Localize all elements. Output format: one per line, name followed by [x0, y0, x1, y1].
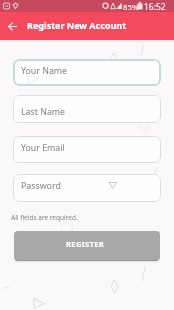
staticText: 85%: [123, 2, 139, 13]
staticText: All fields are required.: [11, 213, 78, 222]
button[interactable]: Your Email: [13, 136, 161, 163]
button[interactable]: REGISTER: [14, 231, 160, 261]
button[interactable]: Password: [13, 174, 161, 202]
button[interactable]: Last Name: [13, 95, 161, 123]
staticText: Register New Account: [27, 19, 127, 31]
staticText: Password: [21, 180, 61, 192]
staticText: REGISTER: [66, 239, 105, 250]
button[interactable]: [3, 17, 21, 35]
staticText: 16:52: [144, 1, 166, 13]
staticText: Last Name: [21, 106, 66, 118]
button[interactable]: Your Name: [13, 59, 161, 86]
staticText: Your Name: [21, 65, 68, 77]
staticText: Your Email: [21, 142, 65, 154]
